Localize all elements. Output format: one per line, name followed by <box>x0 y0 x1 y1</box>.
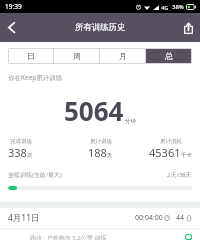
button[interactable]: 跑步 · 户外跑步 5.2公里 训练 <box>0 234 200 240</box>
staticText: 日 <box>27 51 35 61</box>
staticText: 月 <box>119 51 127 61</box>
button[interactable]: 总 <box>146 49 191 63</box>
staticText: 2天/38天 <box>167 171 192 179</box>
button[interactable]: 4月11日 <box>0 208 200 228</box>
button[interactable]: 月 <box>100 49 145 63</box>
button[interactable]: Share <box>176 13 200 42</box>
button[interactable]: Back <box>0 13 22 42</box>
staticText: 所有训练历史 <box>75 22 126 33</box>
staticText: 连续训练(当前/最大) <box>8 171 62 179</box>
staticText: 19:39 <box>5 2 22 11</box>
staticText: 4G <box>161 4 169 11</box>
staticText: 分钟 <box>125 118 136 125</box>
staticText: 次 <box>27 152 33 159</box>
button[interactable]: 周 <box>54 49 99 63</box>
staticText: 44 <box>176 213 185 223</box>
staticText: 4月11日 <box>8 212 40 224</box>
staticText: 5064 <box>64 93 124 128</box>
staticText: 累计训练 <box>90 138 112 145</box>
staticText: 总 <box>165 51 173 61</box>
staticText: 38% <box>172 3 184 11</box>
staticText: 天 <box>107 152 113 159</box>
staticText: 周 <box>73 51 81 61</box>
staticText: 00:04:00 <box>135 213 163 223</box>
staticText: 188 <box>88 145 107 160</box>
staticText: 跑步 · 户外跑步 5.2公里 训练 <box>30 234 107 240</box>
staticText: 累计消耗 <box>160 138 182 145</box>
staticText: 你在Keep累计训练 <box>8 73 63 82</box>
staticText: 338 <box>8 145 27 160</box>
staticText: 千卡 <box>181 152 192 159</box>
staticText: 45361 <box>149 145 181 160</box>
staticText: 完成训练 <box>10 138 32 145</box>
button[interactable]: 日 <box>9 49 53 63</box>
